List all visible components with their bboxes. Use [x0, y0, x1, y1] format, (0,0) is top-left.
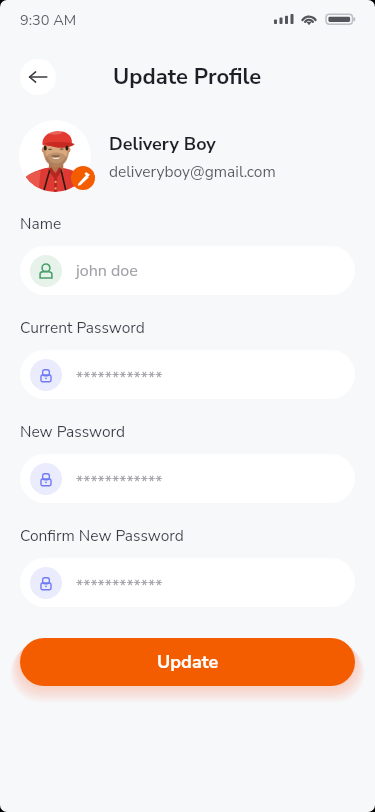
button[interactable]: ************: [20, 350, 355, 399]
staticText: ************: [76, 471, 163, 493]
staticText: New Password: [20, 421, 126, 442]
button[interactable]: ************: [20, 558, 355, 607]
button[interactable]: Edit profile picture: [71, 166, 95, 190]
staticText: deliveryboy@gmail.com: [109, 161, 276, 182]
staticText: Current Password: [20, 317, 145, 338]
button[interactable]: john doe: [20, 246, 355, 295]
staticText: ************: [76, 367, 163, 389]
button[interactable]: ************: [20, 454, 355, 503]
staticText: Delivery Boy: [109, 132, 216, 157]
staticText: 9:30 AM: [20, 10, 77, 30]
staticText: Update Profile: [113, 62, 262, 92]
staticText: john doe: [76, 260, 138, 282]
staticText: ************: [76, 575, 163, 597]
button[interactable]: Update: [20, 638, 355, 686]
staticText: Confirm New Password: [20, 525, 184, 546]
staticText: Update: [157, 650, 219, 675]
staticText: Name: [20, 213, 62, 234]
button[interactable]: Back: [20, 59, 56, 95]
